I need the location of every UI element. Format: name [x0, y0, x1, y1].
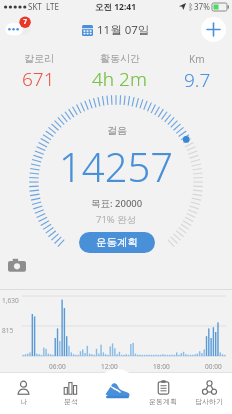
staticText: 운동계획: [149, 397, 177, 406]
staticText: 목표: 20000: [91, 197, 143, 210]
staticText: 운동계획: [96, 236, 138, 249]
staticText: 4h 2m: [92, 66, 147, 92]
staticText: 671: [22, 66, 55, 92]
button[interactable]: 운동계획: [79, 232, 155, 253]
button[interactable]: Add: [201, 17, 226, 42]
staticText: 나: [20, 397, 27, 406]
staticText: 06:00: [49, 362, 66, 371]
staticText: 00:00: [205, 362, 222, 371]
staticText: 답사하기: [195, 397, 223, 406]
button[interactable]: 칼로리: [0, 46, 77, 98]
button[interactable]: Camera: [8, 257, 26, 275]
staticText: 18:00: [153, 362, 170, 371]
staticText: 37%: [194, 1, 210, 12]
staticText: 11월 07일: [97, 22, 150, 38]
button[interactable]: 나: [0, 372, 47, 414]
staticText: SKT: [28, 1, 42, 12]
button[interactable]: 답사하기: [186, 372, 232, 414]
button[interactable]: Activity: [97, 369, 137, 409]
button[interactable]: 분석: [47, 372, 94, 414]
staticText: 오전 12:41: [95, 1, 137, 13]
button[interactable]: 1,630: [0, 290, 232, 372]
staticText: 칼로리: [24, 52, 54, 65]
staticText: 9.7: [184, 67, 211, 93]
button[interactable]: 11월 07일: [82, 22, 150, 38]
button[interactable]: 활동시간: [77, 46, 162, 98]
staticText: 활동시간: [100, 52, 140, 65]
button[interactable]: 운동계획: [140, 372, 186, 414]
staticText: 분석: [64, 397, 78, 406]
button[interactable]: Messages: [4, 17, 38, 43]
staticText: Km: [189, 52, 205, 66]
staticText: 걸음: [107, 124, 127, 137]
button[interactable]: Km: [162, 46, 232, 98]
staticText: 12:00: [101, 362, 118, 371]
staticText: 1,630: [2, 296, 19, 305]
staticText: 7: [21, 17, 29, 26]
staticText: LTE: [46, 1, 59, 12]
staticText: 71% 완성: [96, 213, 137, 226]
staticText: 14257: [59, 139, 174, 193]
staticText: 815: [2, 326, 14, 335]
